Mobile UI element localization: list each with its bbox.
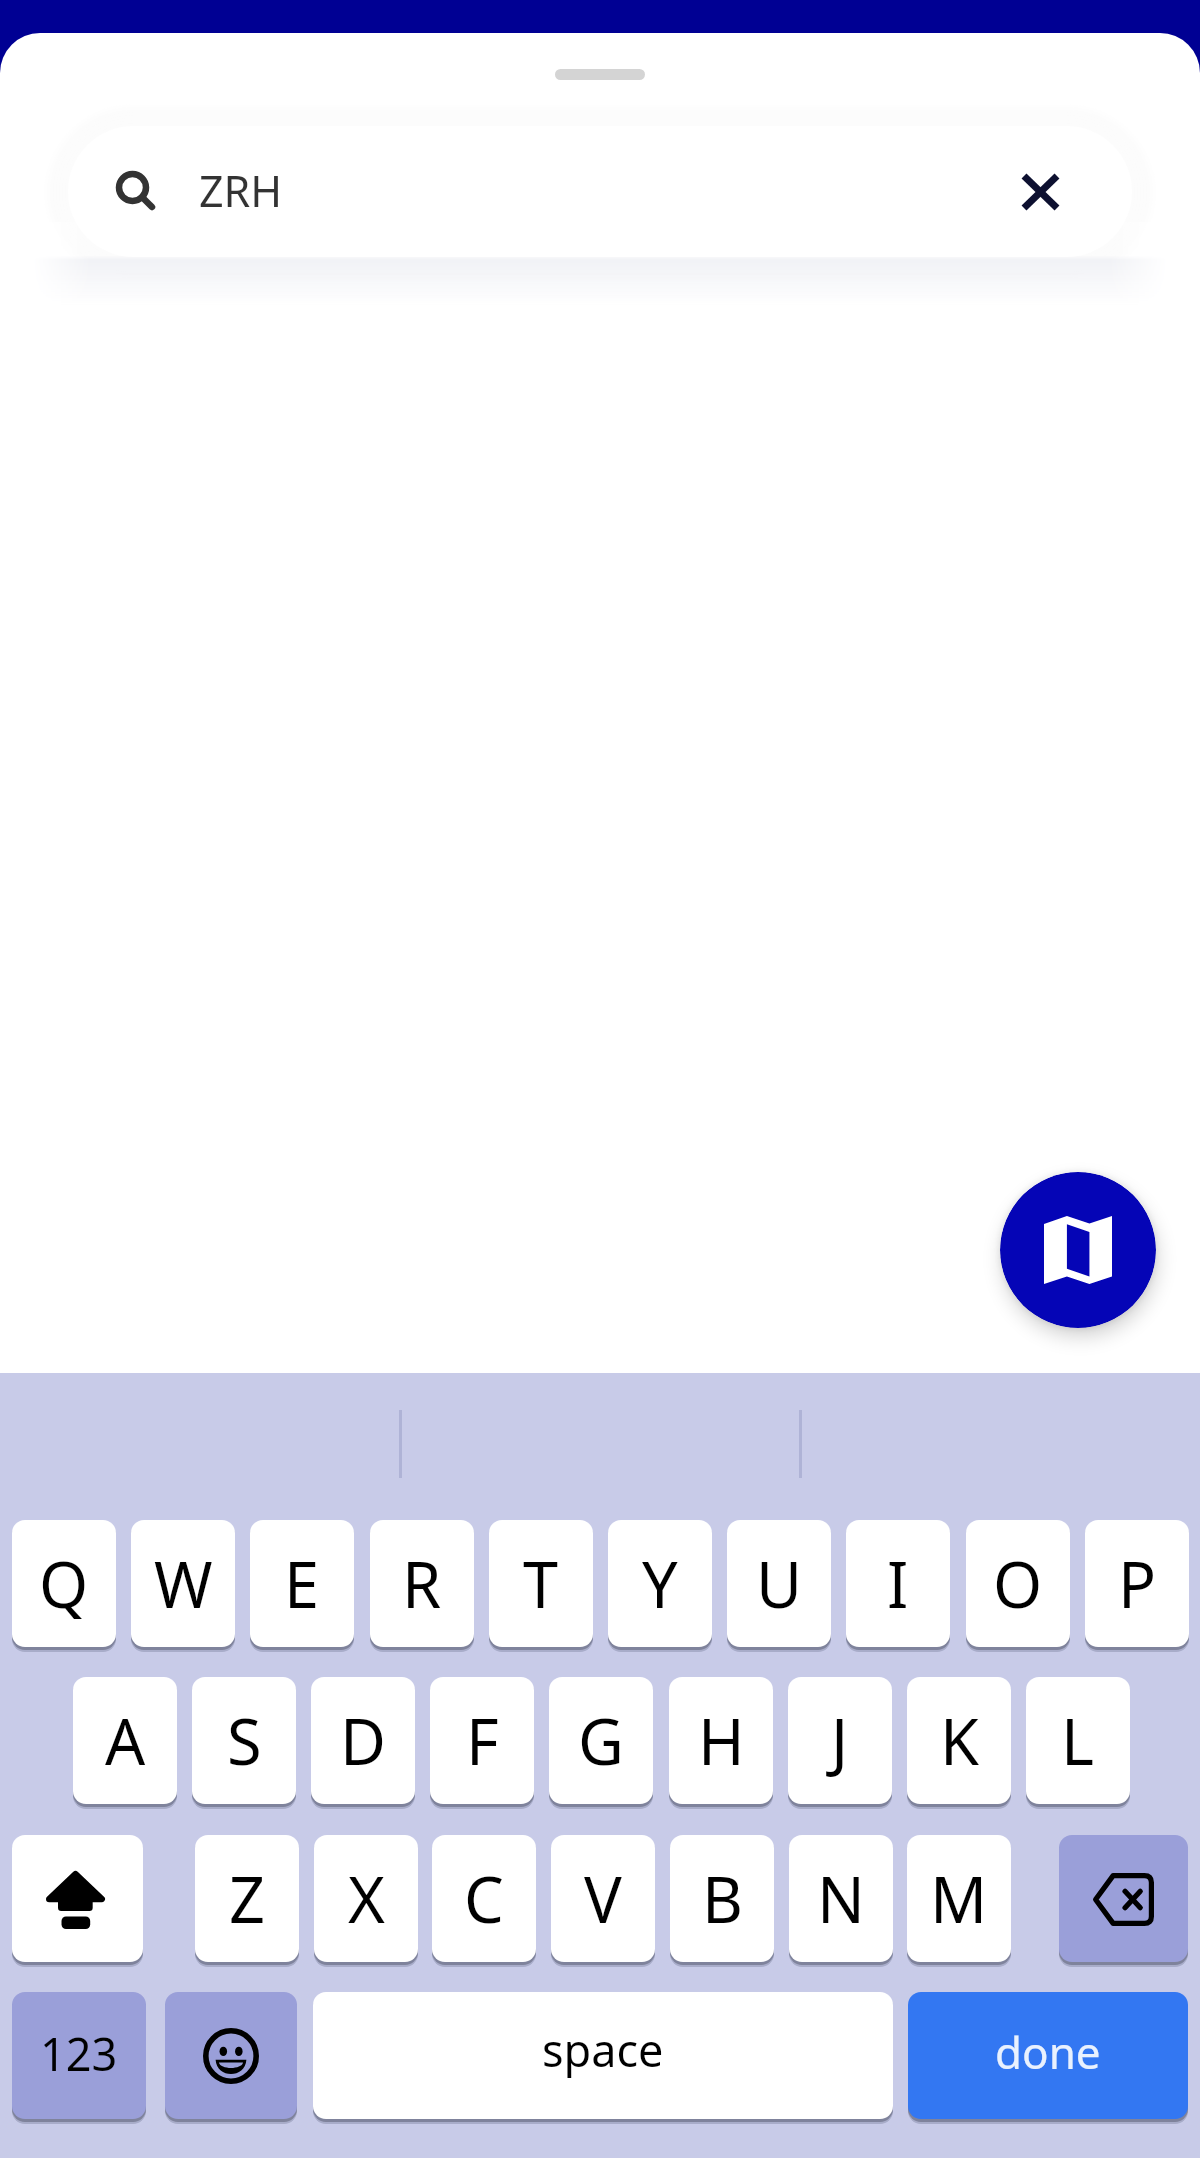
staticText: X — [348, 1856, 385, 1942]
staticText: space — [542, 2019, 664, 2080]
staticText: I — [887, 1541, 909, 1627]
button[interactable]: Q — [12, 1520, 116, 1647]
button[interactable]: Map — [1000, 1172, 1156, 1328]
button[interactable]: Clear search — [994, 146, 1086, 238]
button[interactable]: D — [311, 1677, 415, 1804]
staticText: G — [578, 1698, 624, 1784]
button[interactable]: O — [966, 1520, 1070, 1647]
staticText: C — [464, 1856, 504, 1942]
button[interactable]: S — [192, 1677, 296, 1804]
button[interactable]: K — [907, 1677, 1011, 1804]
staticText: L — [1061, 1698, 1095, 1784]
button[interactable]: ZRH — [68, 126, 1132, 257]
button[interactable]: J — [788, 1677, 892, 1804]
staticText: V — [584, 1856, 622, 1942]
button[interactable]: R — [370, 1520, 474, 1647]
staticText: B — [702, 1856, 743, 1942]
staticText: E — [284, 1541, 320, 1627]
staticText: K — [940, 1698, 979, 1784]
staticText: 123 — [40, 2023, 118, 2084]
staticText: P — [1118, 1541, 1157, 1627]
staticText: O — [993, 1541, 1043, 1627]
button[interactable]: W — [131, 1520, 235, 1647]
staticText: A — [105, 1698, 146, 1784]
button[interactable]: G — [549, 1677, 653, 1804]
staticText: R — [402, 1541, 442, 1627]
button[interactable]: T — [489, 1520, 593, 1647]
staticText: U — [756, 1541, 803, 1627]
button[interactable]: L — [1026, 1677, 1130, 1804]
button[interactable]: I — [846, 1520, 950, 1647]
staticText: M — [930, 1856, 988, 1942]
button[interactable]: E — [250, 1520, 354, 1647]
staticText: H — [698, 1698, 745, 1784]
button[interactable]: C — [432, 1835, 536, 1962]
staticText: F — [466, 1698, 499, 1784]
button[interactable]: B — [670, 1835, 774, 1962]
staticText: ZRH — [199, 161, 283, 220]
button[interactable]: done — [908, 1992, 1188, 2119]
button[interactable]: Y — [608, 1520, 712, 1647]
button[interactable]: N — [789, 1835, 893, 1962]
staticText: T — [523, 1541, 559, 1627]
button[interactable]: A — [73, 1677, 177, 1804]
button[interactable]: H — [669, 1677, 773, 1804]
staticText: W — [154, 1541, 213, 1627]
staticText: S — [227, 1698, 262, 1784]
button[interactable]: F — [430, 1677, 534, 1804]
button[interactable]: U — [727, 1520, 831, 1647]
staticText: D — [340, 1698, 386, 1784]
button[interactable]: Emoji — [165, 1992, 297, 2119]
button[interactable]: space — [313, 1992, 893, 2119]
staticText: done — [995, 2022, 1101, 2082]
button[interactable]: M — [907, 1835, 1011, 1962]
staticText: Y — [642, 1541, 678, 1627]
button[interactable]: X — [314, 1835, 418, 1962]
staticText: Z — [229, 1856, 266, 1942]
button[interactable]: Shift — [12, 1835, 143, 1962]
staticText: N — [817, 1856, 865, 1942]
button[interactable]: 123 — [12, 1992, 146, 2119]
button[interactable]: Z — [195, 1835, 299, 1962]
button[interactable]: Backspace — [1059, 1835, 1188, 1962]
staticText: J — [831, 1698, 849, 1784]
staticText: Q — [39, 1541, 89, 1627]
button[interactable]: V — [551, 1835, 655, 1962]
button[interactable]: P — [1085, 1520, 1189, 1647]
